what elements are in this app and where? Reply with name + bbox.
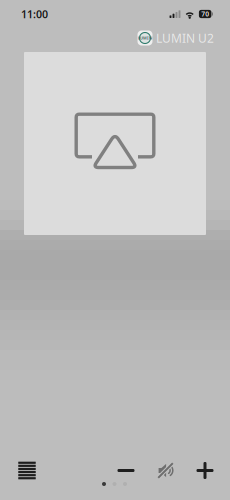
staticText: LUMIN [138,35,152,41]
button[interactable]: Volume up [185,452,225,488]
button[interactable]: LUMIN [137,29,214,47]
button[interactable]: Queue [5,452,49,488]
staticText: LUMIN U2 [156,30,214,46]
staticText: 70 [201,10,209,18]
button[interactable]: Mute [146,452,185,488]
button[interactable]: Volume down [106,452,146,488]
staticText: 11:00 [21,7,48,21]
